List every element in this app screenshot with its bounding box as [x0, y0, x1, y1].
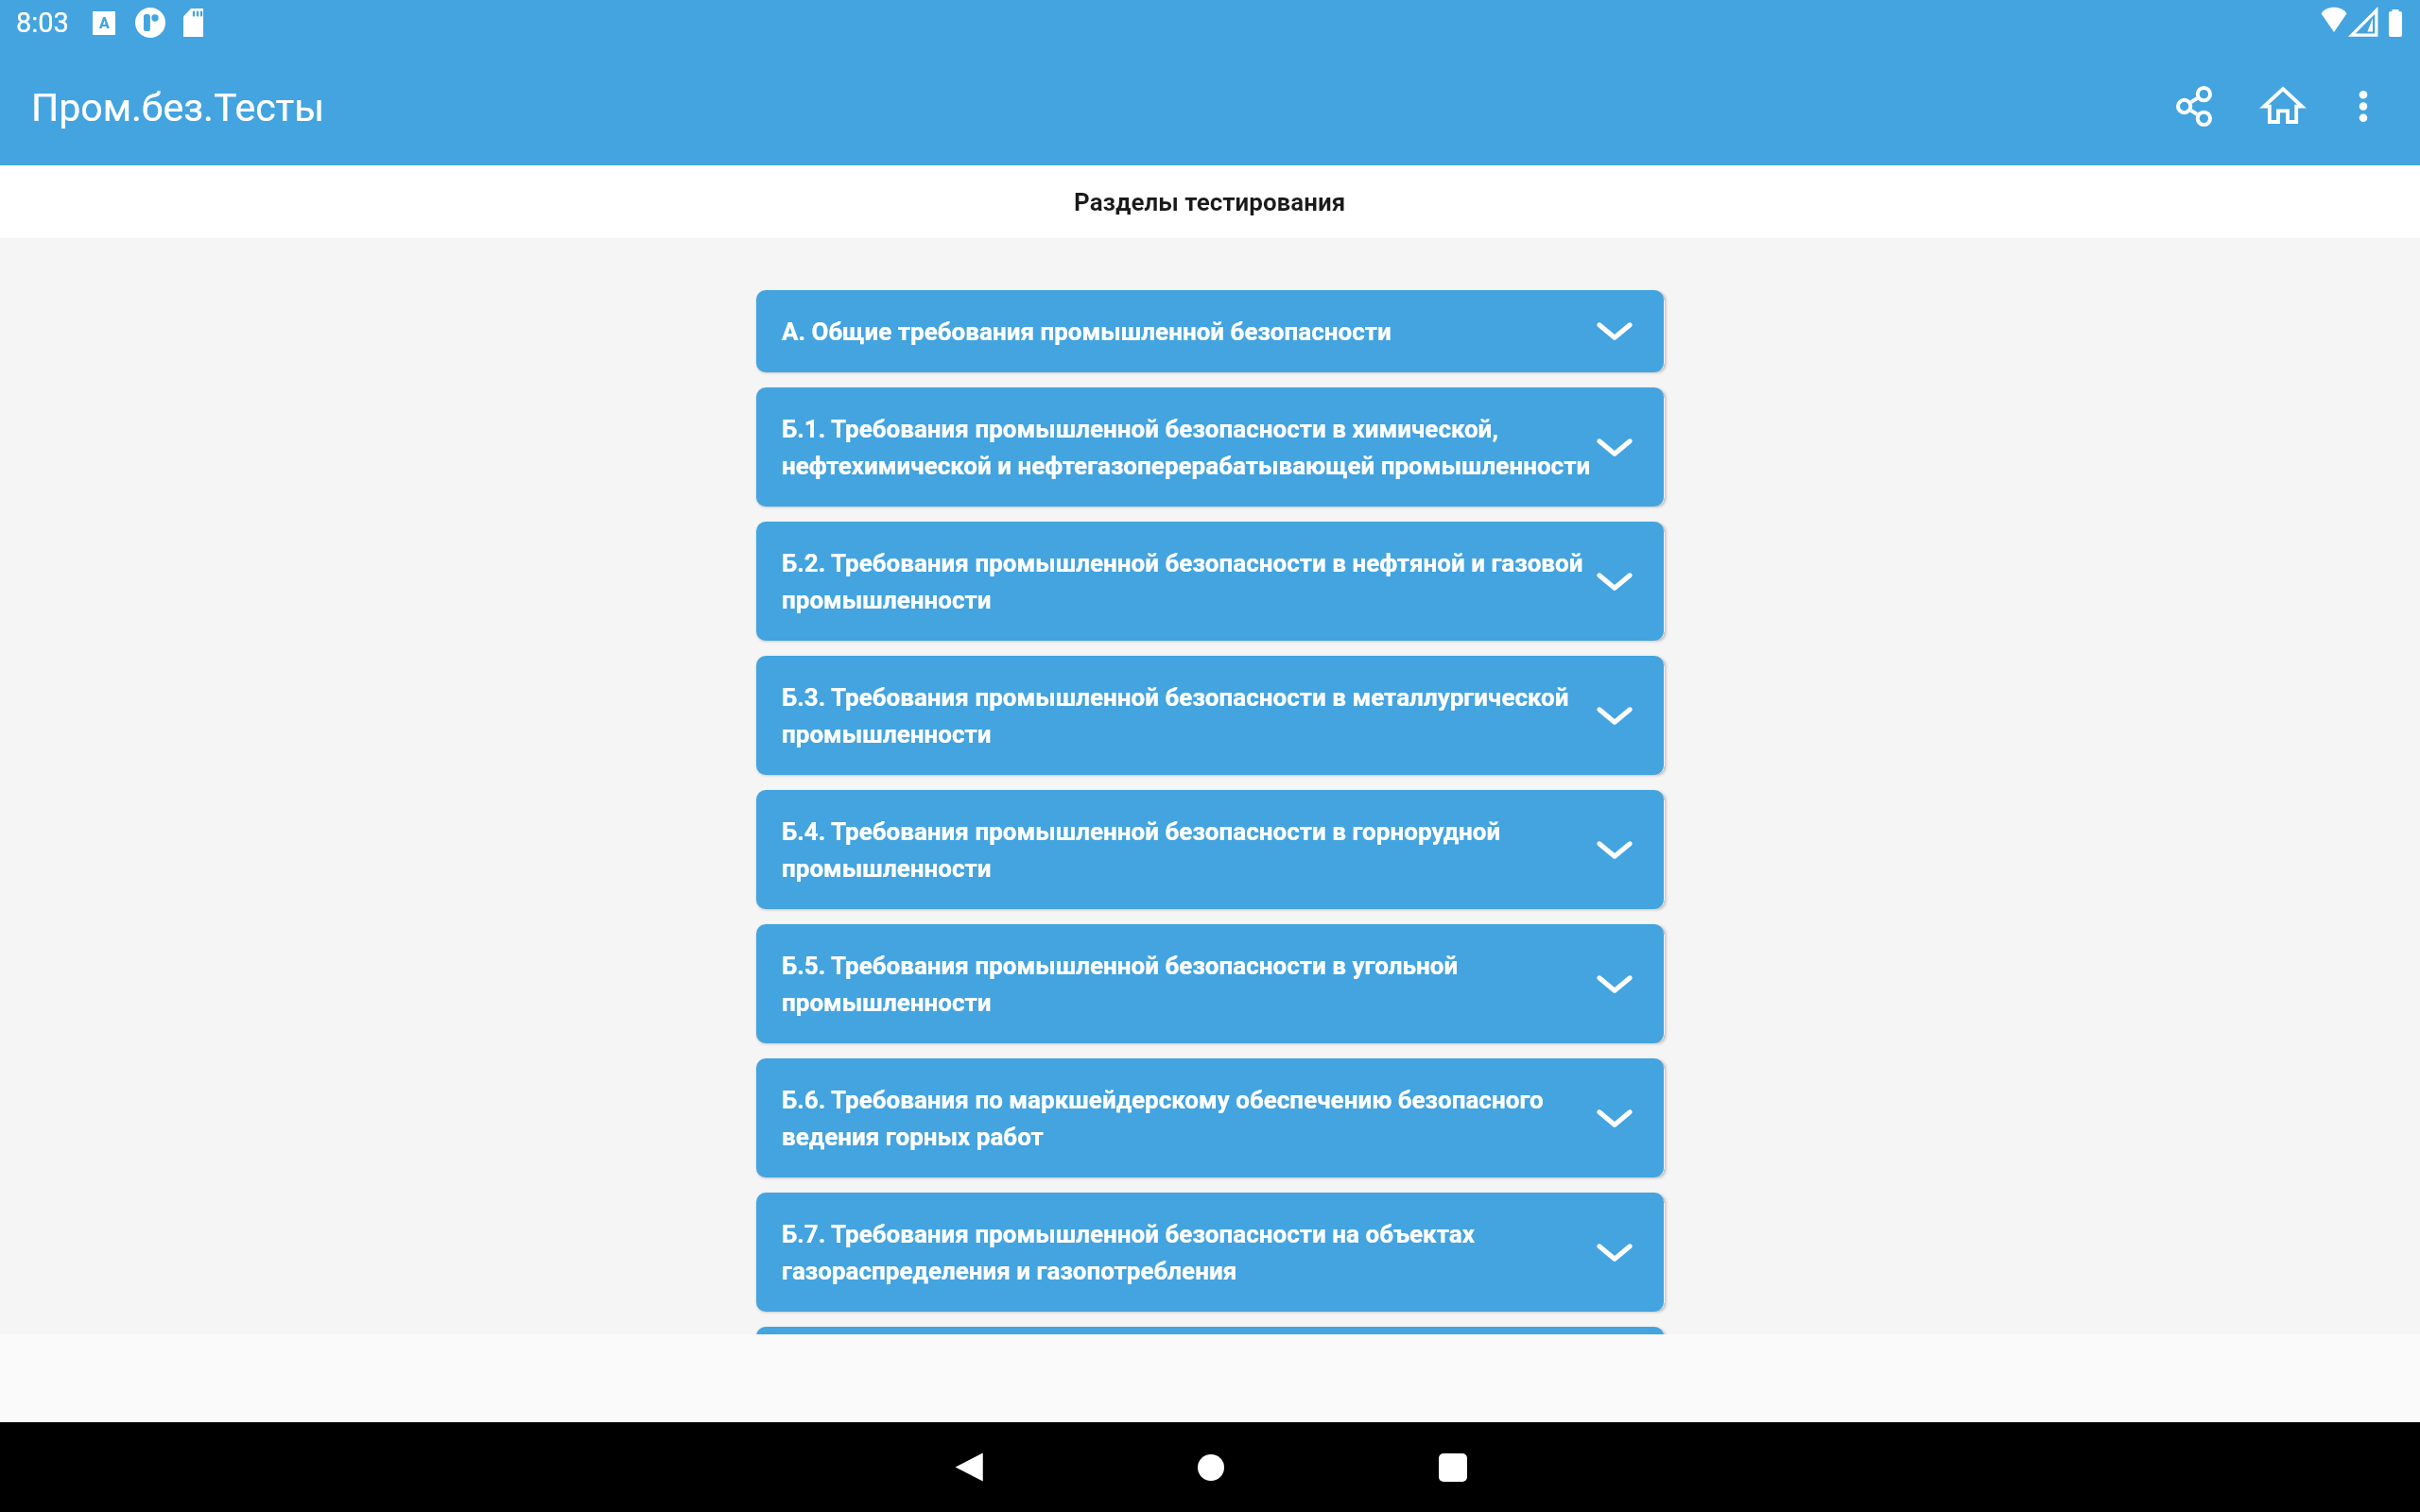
button[interactable]: Б.2. Требования промышленной безопасност… [756, 522, 1664, 641]
button[interactable]: More options [2327, 63, 2399, 152]
staticText: Б.7. Требования промышленной безопасност… [782, 1213, 1600, 1287]
button[interactable]: Б.8. Требования промышленной безопасност… [756, 1327, 1664, 1334]
staticText: Б.1. Требования промышленной безопасност… [782, 408, 1600, 482]
staticText: Б.2. Требования промышленной безопасност… [782, 542, 1600, 616]
button[interactable]: Back [848, 1422, 1090, 1512]
button[interactable]: А. Общие требования промышленной безопас… [756, 290, 1664, 372]
button[interactable]: Б.7. Требования промышленной безопасност… [756, 1193, 1664, 1312]
button[interactable]: Share [2150, 63, 2238, 152]
button[interactable]: Б.6. Требования по маркшейдерскому обесп… [756, 1058, 1664, 1177]
staticText: Разделы тестирования [1074, 188, 1346, 216]
button[interactable]: Б.3. Требования промышленной безопасност… [756, 656, 1664, 775]
button[interactable]: Home [2238, 63, 2327, 152]
staticText: Б.5. Требования промышленной безопасност… [782, 945, 1600, 1019]
staticText: A [99, 14, 110, 32]
staticText: А. Общие требования промышленной безопас… [782, 311, 1391, 348]
staticText: 8:03 [16, 7, 69, 39]
button[interactable]: Б.4. Требования промышленной безопасност… [756, 790, 1664, 909]
staticText: Б.3. Требования промышленной безопасност… [782, 677, 1600, 750]
staticText: Пром.без.Тесты [31, 85, 325, 130]
button[interactable]: Recents [1332, 1422, 1574, 1512]
button[interactable]: Б.1. Требования промышленной безопасност… [756, 387, 1664, 507]
button[interactable]: Б.5. Требования промышленной безопасност… [756, 924, 1664, 1043]
button[interactable]: Home [1090, 1422, 1332, 1512]
staticText: Б.4. Требования промышленной безопасност… [782, 811, 1600, 885]
staticText: Б.6. Требования по маркшейдерскому обесп… [782, 1079, 1600, 1153]
